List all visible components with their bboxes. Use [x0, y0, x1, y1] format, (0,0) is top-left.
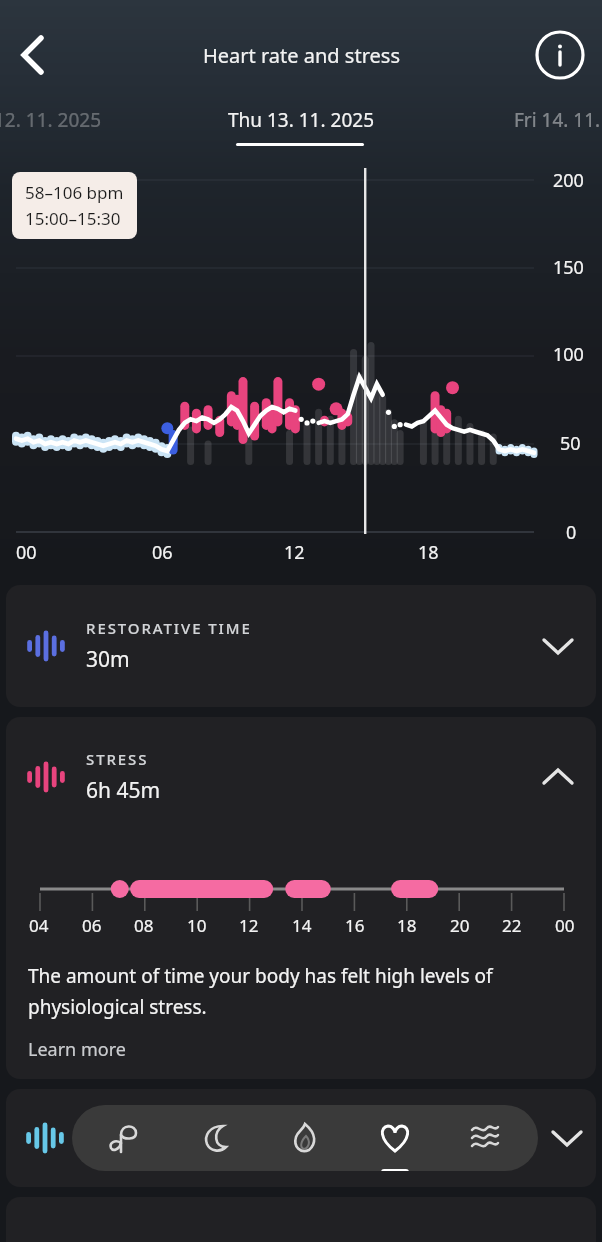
staticText: 08	[134, 914, 154, 937]
staticText: 12	[239, 914, 259, 937]
staticText: 50	[560, 431, 581, 456]
staticText: 00	[16, 540, 37, 565]
staticText: 18	[418, 540, 439, 565]
staticText: 14	[292, 914, 312, 937]
staticText: 0	[566, 520, 577, 545]
staticText: 06	[152, 540, 173, 565]
staticText: 100	[553, 342, 584, 367]
staticText: 18	[397, 914, 417, 937]
staticText: Heart rate and stress	[203, 42, 400, 69]
button[interactable]: Sleep	[178, 1105, 252, 1171]
staticText: 200	[553, 168, 584, 193]
button[interactable]: Fri 14. 11. 2	[514, 107, 602, 133]
staticText: 22	[502, 914, 522, 937]
staticText: 04	[29, 914, 49, 937]
staticText: 30m	[86, 645, 130, 674]
staticText: 10	[187, 914, 207, 937]
staticText: 6h 45m	[86, 776, 161, 805]
button[interactable]: Back	[4, 27, 60, 83]
staticText: The amount of time your body has felt hi…	[28, 963, 574, 1019]
staticText: 00	[555, 914, 575, 937]
button[interactable]: 58–106 bpm	[12, 172, 137, 239]
button[interactable]: RESTORATIVE TIME	[6, 585, 596, 707]
staticText: 16	[345, 914, 365, 937]
staticText: 150	[553, 255, 584, 280]
button[interactable]: Heart rate	[358, 1105, 432, 1171]
staticText: RESTORATIVE TIME	[86, 618, 252, 638]
button[interactable]: Trends	[448, 1105, 522, 1171]
button[interactable]: Activity	[88, 1105, 162, 1171]
button[interactable]: Collapse	[538, 1105, 596, 1171]
staticText: 20	[450, 914, 470, 937]
button[interactable]: 12. 11. 2025	[0, 107, 102, 133]
button[interactable]: Info	[536, 31, 584, 79]
button[interactable]: Learn more	[28, 1037, 126, 1062]
staticText: 06	[82, 914, 102, 937]
button[interactable]: Calories	[268, 1105, 342, 1171]
staticText: 12	[284, 540, 305, 565]
staticText: 58–106 bpm	[25, 181, 124, 204]
staticText: STRESS	[86, 749, 149, 769]
button[interactable]: STRESS	[6, 717, 596, 837]
staticText: 15:00–15:30	[25, 207, 121, 230]
button[interactable]: Thu 13. 11. 2025	[228, 107, 374, 133]
staticText: Learn more	[28, 1037, 126, 1062]
